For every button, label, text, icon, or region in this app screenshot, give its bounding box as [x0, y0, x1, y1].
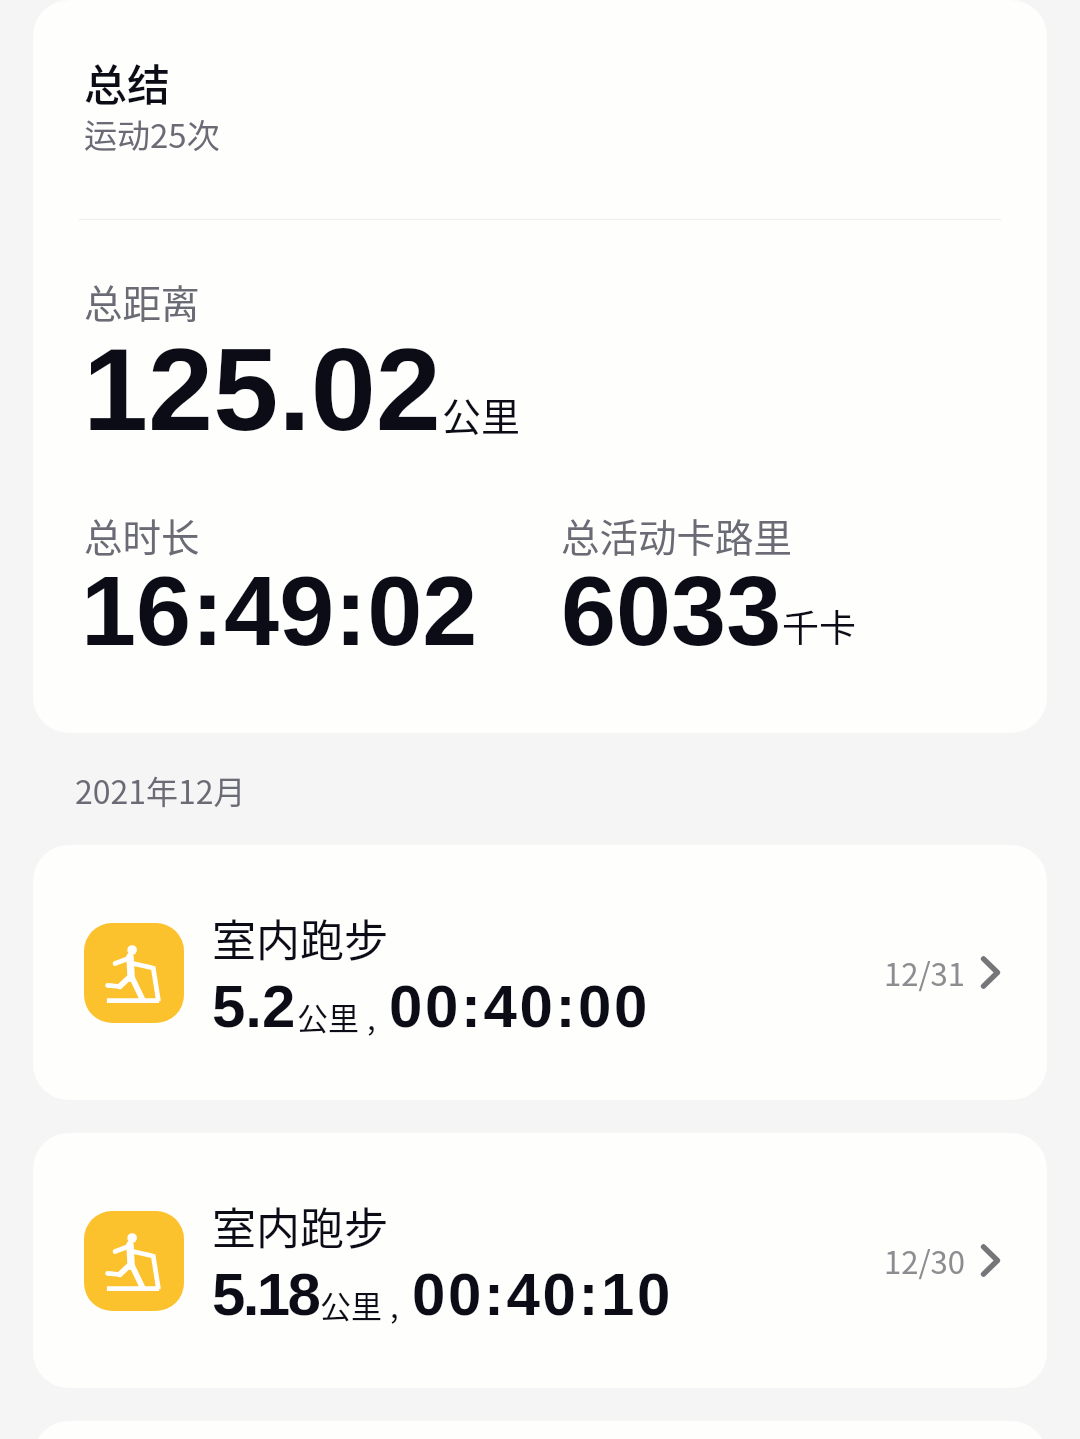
- staticText: 00:40:00: [389, 973, 650, 1040]
- staticText: 12/31: [884, 950, 965, 995]
- staticText: 总距离: [84, 273, 200, 329]
- staticText: 千卡: [782, 599, 856, 653]
- staticText: 12/30: [884, 1238, 965, 1283]
- staticText: 总时长: [84, 507, 200, 563]
- staticText: 5.2: [212, 973, 296, 1040]
- staticText: 125.02: [83, 324, 441, 455]
- staticText: 室内跑步: [212, 1194, 388, 1258]
- staticText: 公里: [442, 386, 521, 442]
- staticText: 总活动卡路里: [561, 507, 793, 563]
- staticText: ,: [367, 994, 376, 1039]
- staticText: 5.18: [212, 1261, 319, 1328]
- button[interactable]: 室内跑步: [33, 1133, 1047, 1388]
- other: Open workout details: [982, 957, 999, 988]
- staticText: 6033: [561, 555, 782, 666]
- staticText: 00:40:10: [412, 1261, 673, 1328]
- staticText: 室内跑步: [212, 906, 388, 970]
- staticText: 运动25次: [84, 110, 220, 158]
- other: Open workout details: [982, 1245, 999, 1276]
- staticText: 16:49:02: [81, 555, 478, 666]
- staticText: 总结: [84, 51, 170, 113]
- staticText: 2021年12月: [75, 767, 246, 813]
- staticText: 公里: [320, 1282, 382, 1327]
- staticText: 公里: [297, 994, 359, 1039]
- staticText: ,: [390, 1282, 399, 1327]
- button[interactable]: 室内跑步: [33, 845, 1047, 1100]
